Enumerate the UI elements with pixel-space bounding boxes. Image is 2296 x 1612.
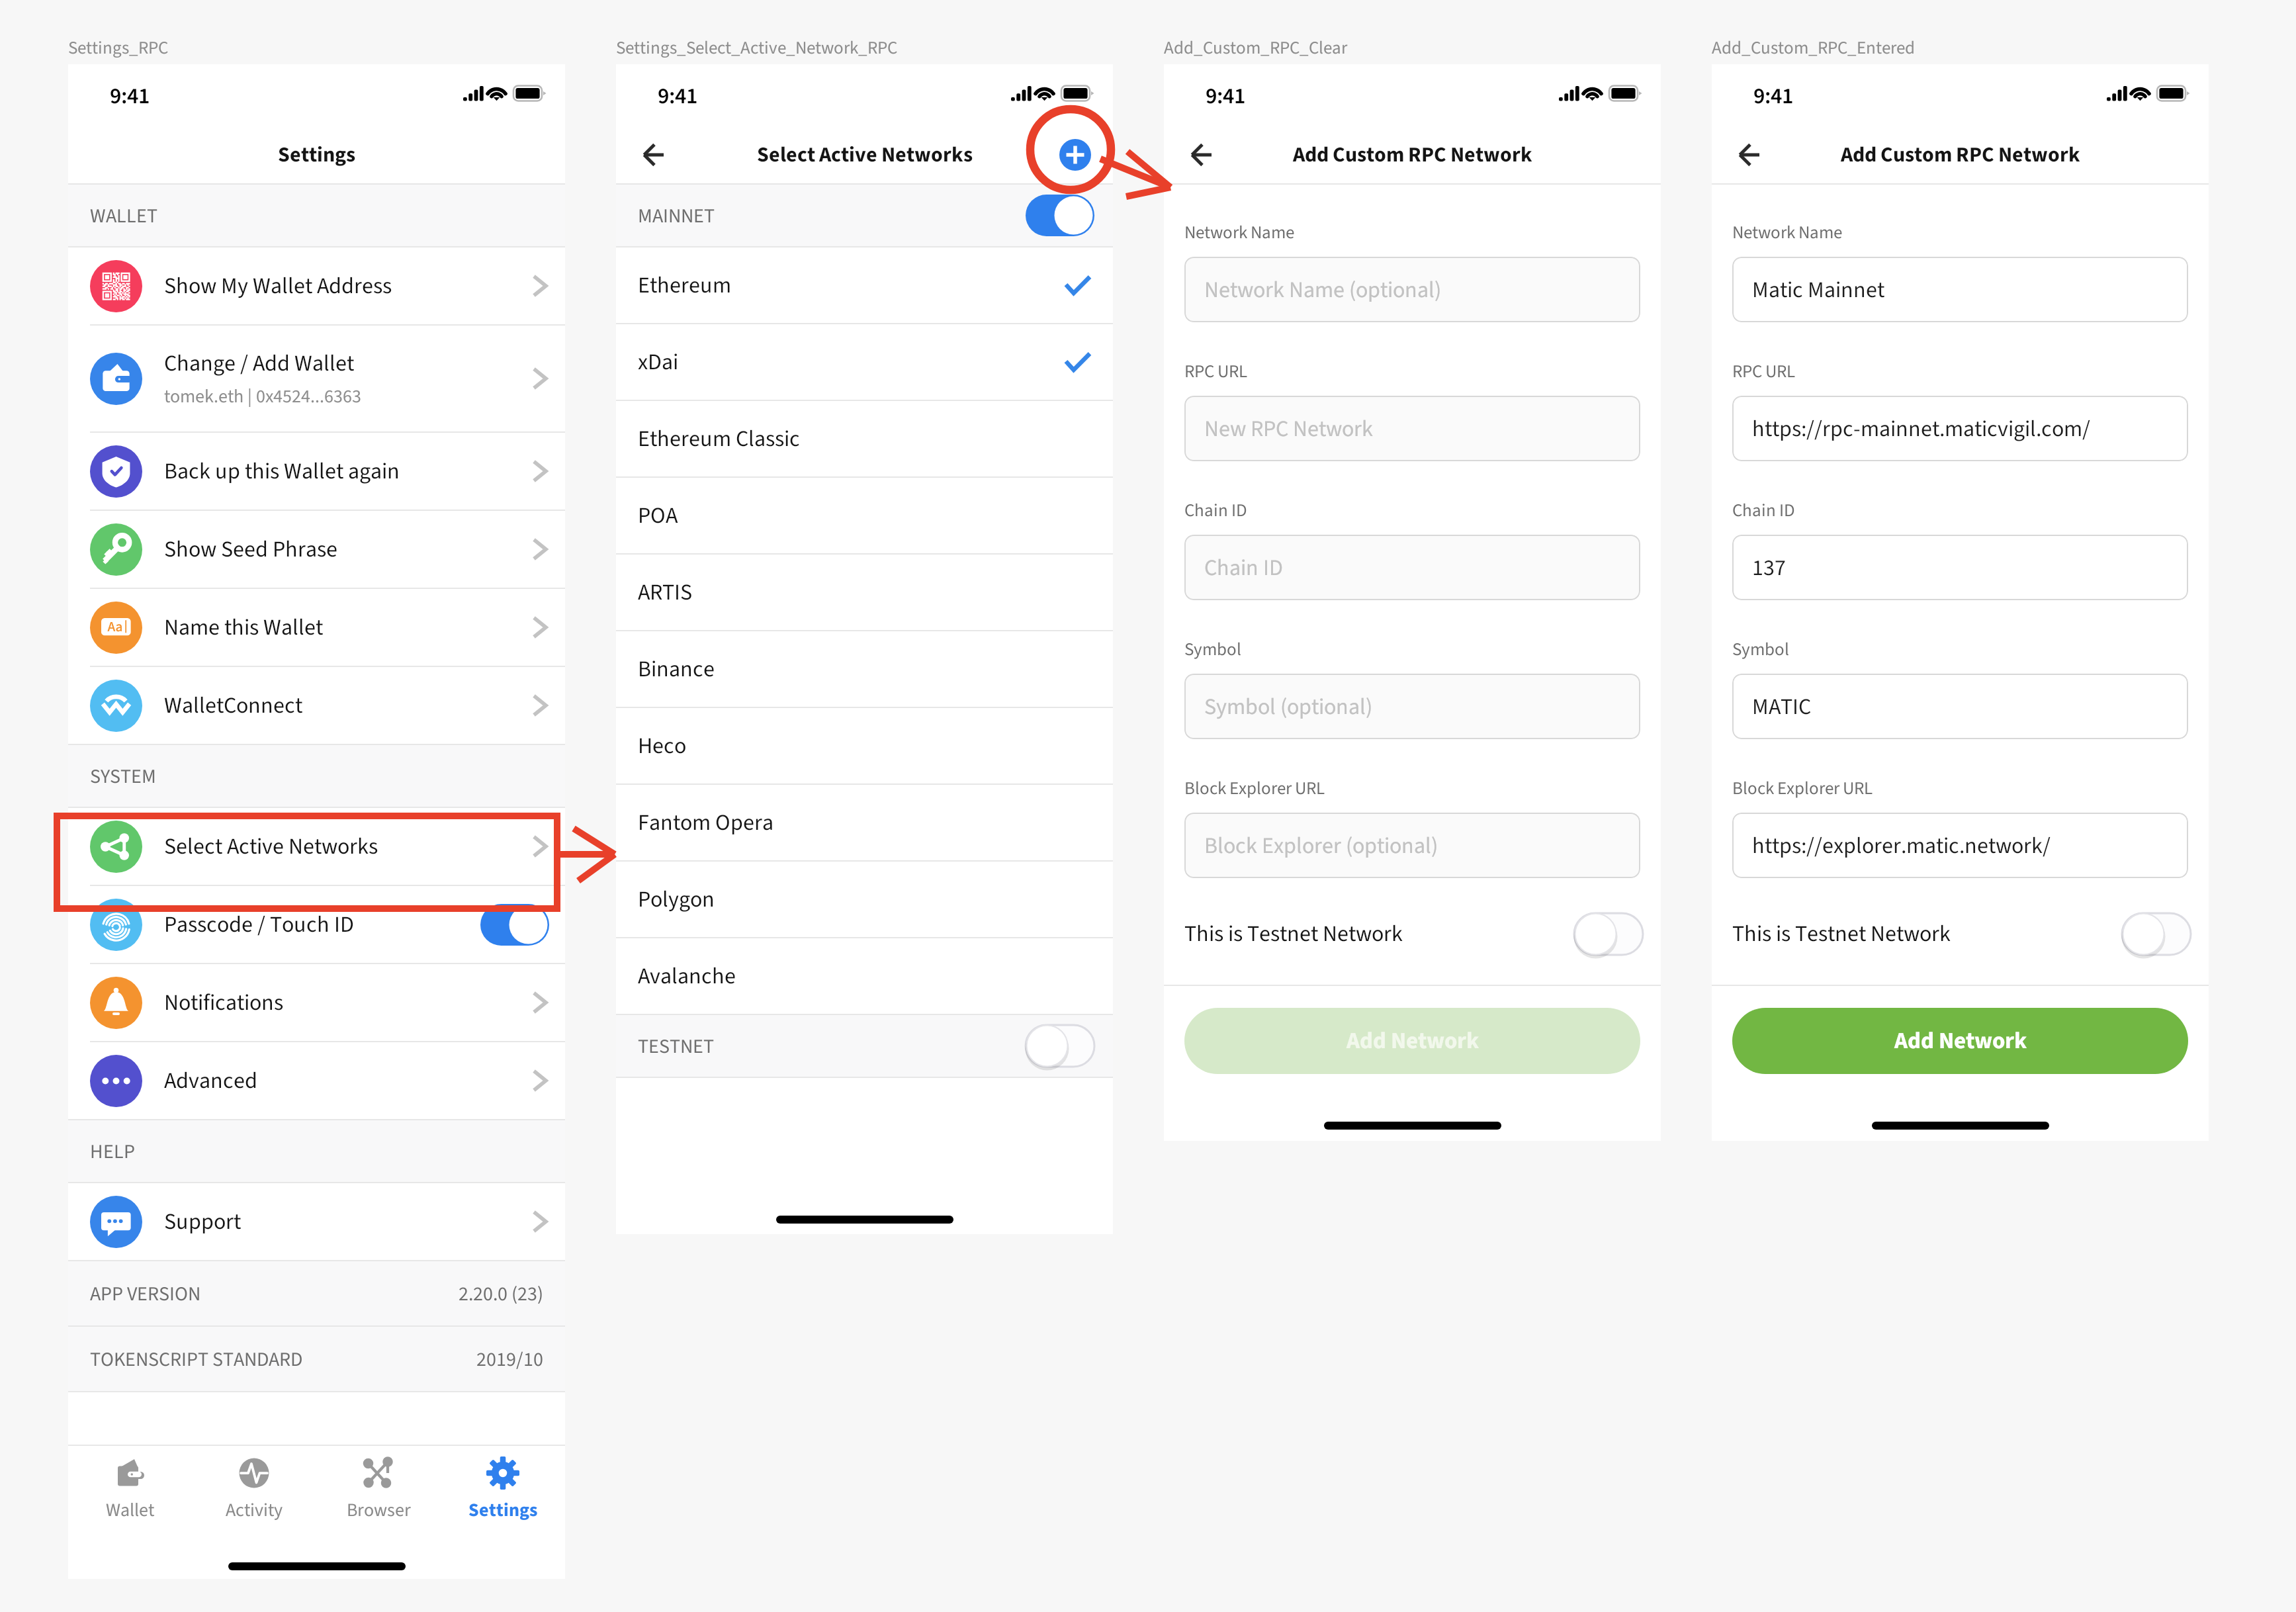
- button[interactable]: [1184, 257, 1640, 322]
- button[interactable]: [1732, 396, 2188, 461]
- button[interactable]: Enabled, toggle: [480, 904, 549, 946]
- button[interactable]: Add custom RPC network: [1059, 139, 1091, 171]
- button[interactable]: [616, 478, 1113, 555]
- button[interactable]: [616, 862, 1113, 938]
- button[interactable]: [68, 1446, 192, 1549]
- button[interactable]: [616, 631, 1113, 708]
- button[interactable]: [1732, 674, 2188, 739]
- button[interactable]: [68, 247, 565, 326]
- button[interactable]: [68, 964, 565, 1042]
- button[interactable]: [1184, 535, 1640, 600]
- button[interactable]: [616, 555, 1113, 631]
- button[interactable]: [68, 433, 565, 511]
- button[interactable]: [1184, 674, 1640, 739]
- button[interactable]: [316, 1446, 441, 1549]
- button[interactable]: [1732, 257, 2188, 322]
- button[interactable]: Enabled, toggle: [68, 886, 565, 964]
- button[interactable]: Disabled, toggle: [1574, 913, 1643, 955]
- button[interactable]: [616, 324, 1113, 401]
- button[interactable]: [68, 1183, 565, 1261]
- button[interactable]: [1732, 1008, 2188, 1074]
- button[interactable]: [68, 667, 565, 745]
- button[interactable]: [441, 1446, 565, 1549]
- button[interactable]: Enabled, toggle: [1026, 195, 1094, 236]
- button[interactable]: [1732, 535, 2188, 600]
- button[interactable]: Back: [1724, 130, 1774, 180]
- button[interactable]: [192, 1446, 316, 1549]
- button[interactable]: [616, 938, 1113, 1015]
- button[interactable]: [1184, 1008, 1640, 1074]
- button[interactable]: Disabled, toggle: [2122, 913, 2191, 955]
- button[interactable]: [68, 326, 565, 433]
- button[interactable]: Disabled, toggle: [1026, 1025, 1094, 1067]
- button[interactable]: [616, 401, 1113, 478]
- button[interactable]: [1184, 396, 1640, 461]
- button[interactable]: [68, 589, 565, 667]
- button[interactable]: [616, 708, 1113, 785]
- button[interactable]: [1732, 813, 2188, 878]
- button[interactable]: Back: [628, 130, 678, 180]
- button[interactable]: Back: [1176, 130, 1226, 180]
- button[interactable]: [68, 1042, 565, 1120]
- button[interactable]: [1184, 813, 1640, 878]
- button[interactable]: [616, 247, 1113, 324]
- button[interactable]: [68, 808, 565, 886]
- button[interactable]: [616, 785, 1113, 862]
- button[interactable]: [68, 511, 565, 589]
